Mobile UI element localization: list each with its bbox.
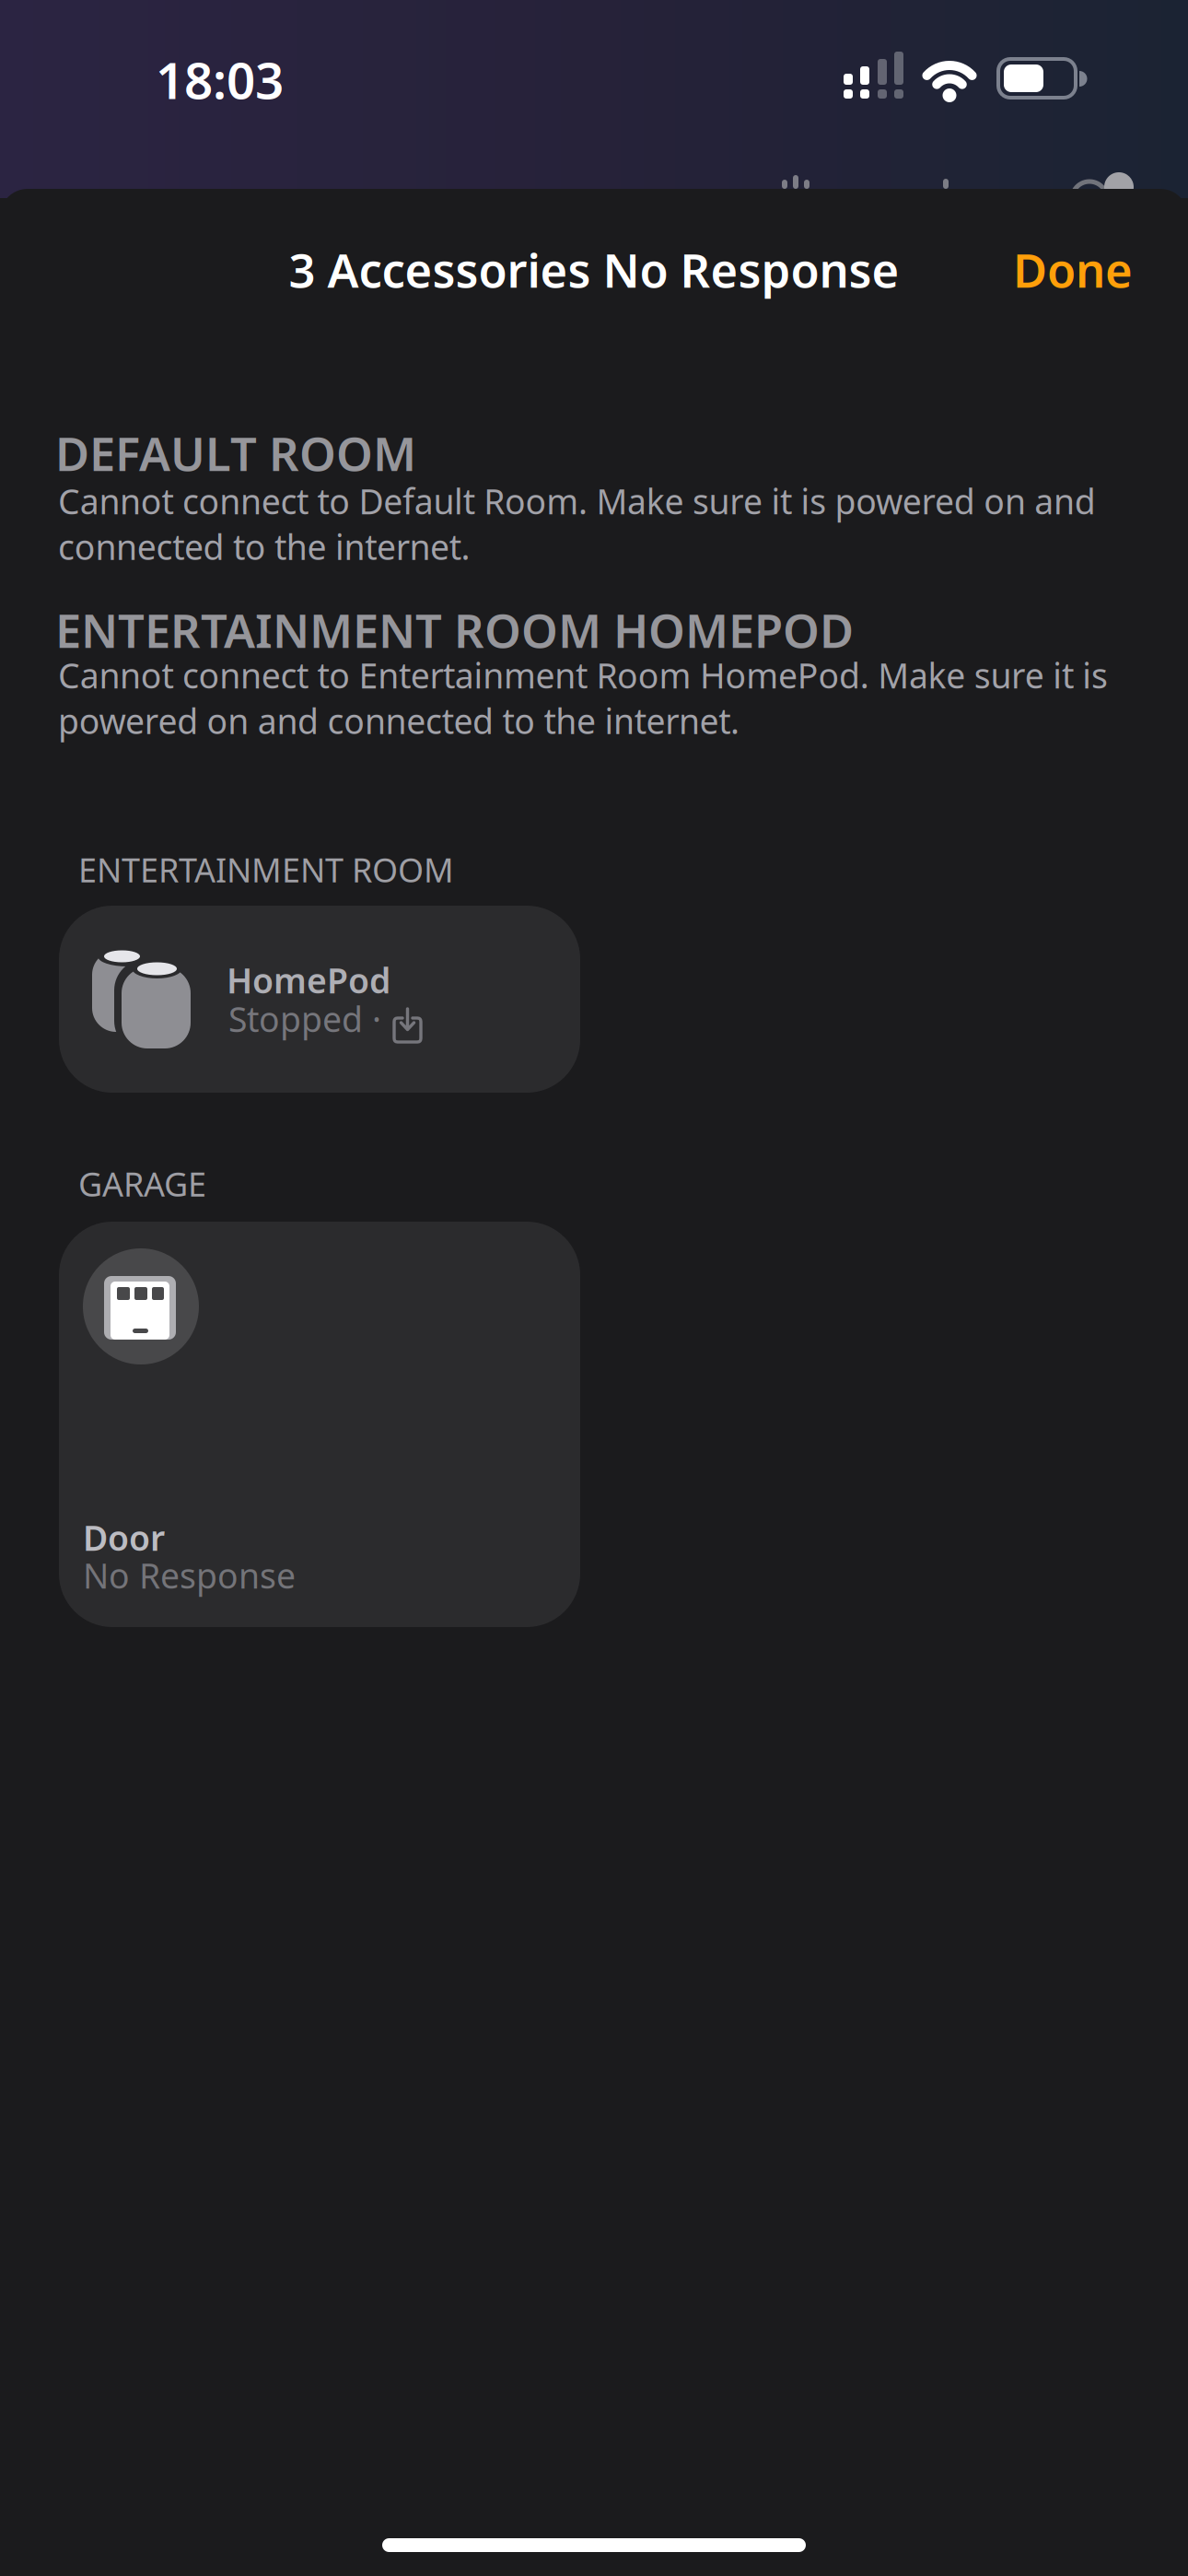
staticText: ENTERTAINMENT ROOM HOMEPOD <box>55 599 854 661</box>
button[interactable]: Door <box>59 1222 580 1627</box>
staticText: GARAGE <box>78 1162 206 1206</box>
button[interactable]: HomePod <box>59 906 580 1093</box>
staticText: ENTERTAINMENT ROOM <box>78 848 454 892</box>
staticText: Done <box>1013 239 1133 301</box>
button[interactable]: Done <box>1013 239 1133 301</box>
staticText: Cannot connect to Entertainment Room Hom… <box>58 652 1108 744</box>
staticText: Door <box>83 1515 165 1560</box>
staticText: HomePod <box>227 957 390 1003</box>
staticText: DEFAULT ROOM <box>55 422 416 484</box>
staticText: Stopped · <box>228 996 381 1042</box>
staticText: 3 Accessories No Response <box>289 239 899 301</box>
staticText: No Response <box>83 1552 296 1598</box>
staticText: Cannot connect to Default Room. Make sur… <box>58 478 1096 570</box>
staticText: 18:03 <box>156 46 284 113</box>
